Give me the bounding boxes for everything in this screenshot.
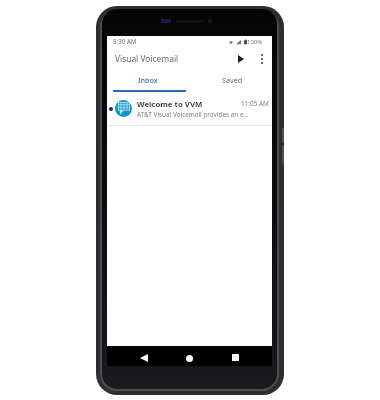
button[interactable]: Home [179, 348, 199, 368]
staticText: Inbox [138, 75, 158, 85]
staticText: 11:05 AM [241, 99, 269, 108]
staticText: Welcome to VVM [137, 99, 203, 110]
button[interactable]: Saved [189, 70, 272, 91]
staticText: AT&T Visual Voicemail provides an e… [137, 110, 249, 119]
button[interactable]: Inbox [107, 70, 189, 91]
button[interactable]: Recent apps [225, 347, 245, 367]
button[interactable]: Welcome to VVM [107, 92, 272, 125]
button[interactable]: Play all voicemails [231, 49, 251, 69]
staticText: 100% [247, 38, 263, 46]
staticText: Visual Voicemail [115, 53, 179, 64]
button[interactable]: Back [134, 348, 154, 368]
button[interactable]: More options [252, 49, 272, 69]
staticText: Saved [222, 75, 243, 85]
staticText: 9:30 AM [113, 37, 137, 45]
